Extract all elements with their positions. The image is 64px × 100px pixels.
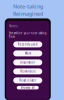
staticText: Read-it-later: [19, 79, 36, 82]
staticText: Reimagined: [13, 10, 43, 17]
staticText: Inspiration: [20, 61, 35, 64]
staticText: Reminders: [20, 70, 35, 73]
button[interactable]: Browse all: [17, 86, 39, 89]
button[interactable]: Reminders: [13, 68, 42, 74]
staticText: Notes: [9, 24, 17, 28]
staticText: Streamline your note-taking flow: [9, 31, 47, 38]
button[interactable]: Recently used: [13, 41, 42, 47]
staticText: Browse all: [21, 86, 35, 89]
staticText: Work: [25, 52, 31, 55]
button[interactable]: Inspiration: [13, 59, 42, 65]
staticText: Recently used: [18, 43, 38, 46]
button[interactable]: Read-it-later: [13, 77, 42, 83]
staticText: Note-taking: [13, 3, 43, 10]
button[interactable]: Work: [13, 50, 42, 56]
